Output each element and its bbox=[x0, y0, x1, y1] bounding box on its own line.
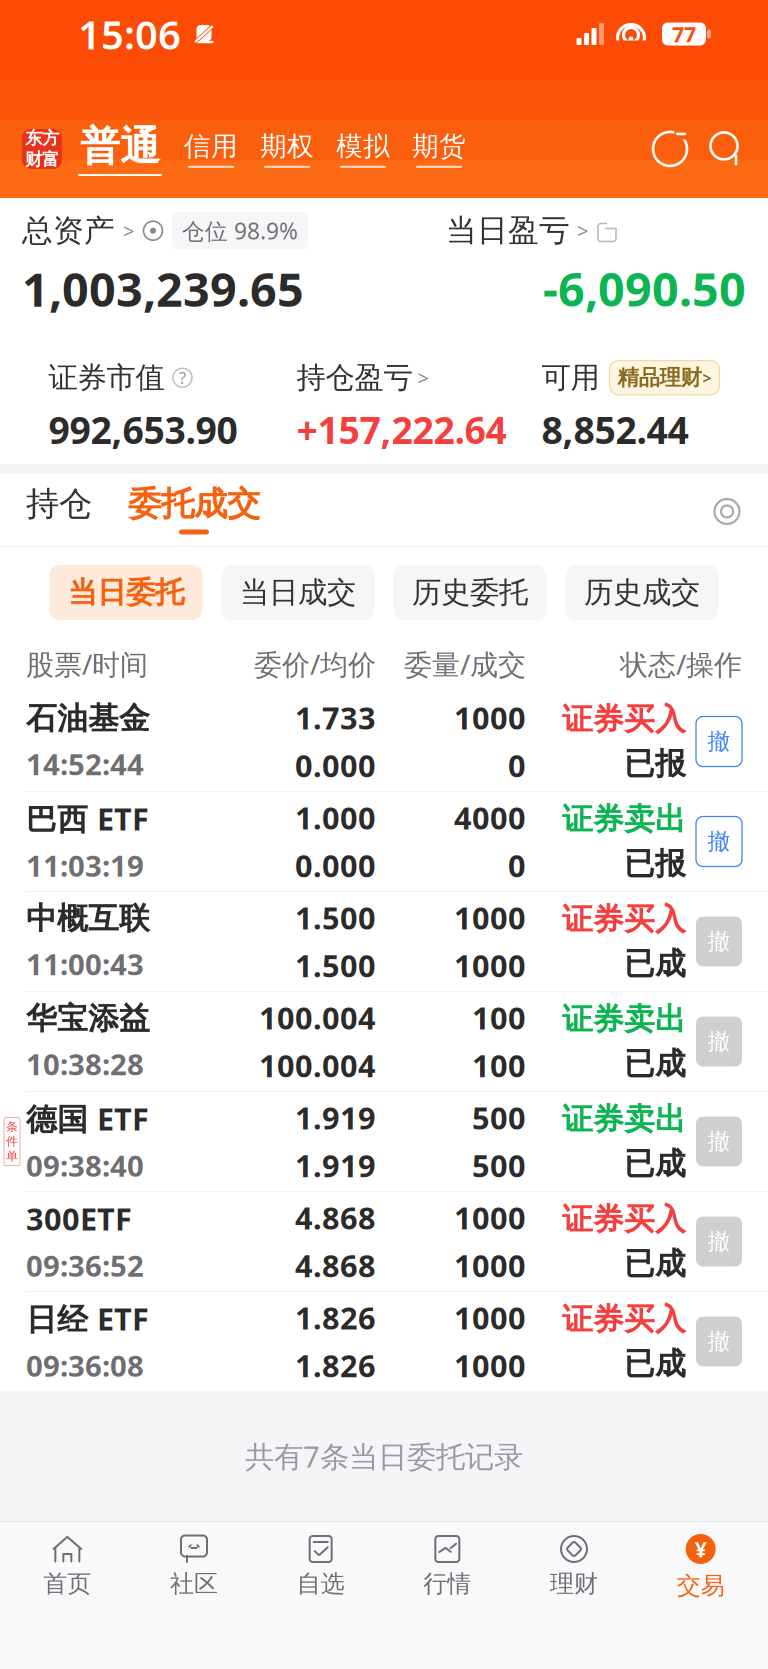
staticText: 1.733 bbox=[295, 697, 376, 738]
staticText: 8,852.44 bbox=[541, 405, 688, 454]
staticText: 1.000 bbox=[295, 797, 376, 838]
staticText: 09:36:52 bbox=[26, 1246, 144, 1285]
staticText: 77 bbox=[672, 20, 696, 48]
staticText: 14:52:44 bbox=[26, 744, 144, 783]
staticText: 1000 bbox=[454, 1297, 526, 1338]
button[interactable]: 刷新 bbox=[650, 129, 690, 169]
button[interactable]: 自选 bbox=[257, 1524, 384, 1604]
button[interactable]: 历史成交 bbox=[565, 565, 718, 620]
button[interactable]: 期货 bbox=[412, 130, 466, 168]
staticText: 仓位 98.9% bbox=[182, 216, 298, 246]
button[interactable]: 石油基金 bbox=[0, 692, 768, 791]
staticText: 可用 bbox=[541, 360, 599, 396]
staticText: 11:00:43 bbox=[26, 944, 144, 983]
staticText: 已报 bbox=[624, 745, 686, 783]
staticText: 富 bbox=[42, 149, 59, 170]
button[interactable]: 撤单 bbox=[696, 716, 742, 766]
staticText: 4.868 bbox=[295, 1197, 376, 1238]
button[interactable]: 搜索 bbox=[706, 129, 746, 169]
button[interactable]: 持仓 bbox=[26, 483, 92, 536]
button[interactable]: 行情 bbox=[384, 1524, 511, 1604]
staticText: 10:38:28 bbox=[26, 1044, 144, 1083]
staticText: -6,090.50 bbox=[543, 257, 746, 319]
staticText: 期货 bbox=[412, 130, 466, 163]
staticText: 已成 bbox=[624, 1145, 686, 1183]
staticText: 证券买入 bbox=[562, 900, 686, 938]
staticText: 0 bbox=[508, 845, 526, 886]
button[interactable]: 日经 ETF bbox=[0, 1292, 768, 1391]
staticText: 巴西 ETF bbox=[26, 798, 149, 839]
button[interactable]: 当日成交 bbox=[221, 565, 374, 620]
staticText: 500 bbox=[472, 1097, 526, 1138]
button[interactable]: 设置 bbox=[712, 496, 742, 536]
staticText: 证券买入 bbox=[562, 1200, 686, 1238]
button[interactable]: 300ETF bbox=[0, 1192, 768, 1291]
button[interactable]: 当日盈亏 bbox=[446, 212, 619, 249]
staticText: 证券买入 bbox=[562, 700, 686, 738]
button[interactable]: 期权 bbox=[260, 130, 314, 168]
staticText: 证券市值 bbox=[48, 360, 164, 396]
staticText: 模拟 bbox=[336, 130, 390, 163]
button[interactable]: 条 bbox=[0, 1092, 768, 1191]
button[interactable]: 普通 bbox=[78, 122, 162, 176]
button[interactable]: 撤单 bbox=[696, 916, 742, 966]
button[interactable]: 撤单 bbox=[696, 1216, 742, 1266]
staticText: 普通 bbox=[80, 122, 160, 171]
staticText: 4.868 bbox=[295, 1245, 376, 1286]
button[interactable]: 精品理财 bbox=[609, 361, 719, 395]
staticText: 股票/时间 bbox=[26, 645, 148, 683]
button[interactable]: 模拟 bbox=[336, 130, 390, 168]
staticText: 撤 bbox=[707, 728, 730, 755]
staticText: 已成 bbox=[624, 1045, 686, 1083]
button[interactable]: 撤单 bbox=[696, 1016, 742, 1066]
staticText: > bbox=[702, 367, 711, 388]
button[interactable]: 理财 bbox=[511, 1524, 637, 1604]
staticText: 1.826 bbox=[295, 1297, 376, 1338]
staticText: ? bbox=[179, 367, 186, 388]
staticText: ¥ bbox=[695, 1535, 707, 1563]
button[interactable]: 撤单 bbox=[696, 816, 742, 866]
staticText: 条 bbox=[6, 1119, 18, 1134]
button[interactable]: 中概互联 bbox=[0, 892, 768, 991]
staticText: 1.919 bbox=[295, 1097, 376, 1138]
staticText: 100.004 bbox=[259, 1045, 376, 1086]
staticText: 行情 bbox=[423, 1569, 471, 1598]
button[interactable]: 社区 bbox=[131, 1524, 257, 1604]
button[interactable]: 首页 bbox=[4, 1524, 131, 1604]
button[interactable]: 总资产 bbox=[22, 212, 308, 250]
staticText: 300ETF bbox=[26, 1198, 132, 1239]
button[interactable]: 历史委托 bbox=[393, 565, 546, 620]
staticText: 100 bbox=[472, 997, 526, 1038]
button[interactable]: 撤单 bbox=[696, 1316, 742, 1366]
staticText: 德国 ETF bbox=[26, 1098, 149, 1139]
staticText: 东 bbox=[25, 128, 42, 149]
staticText: 证券卖出 bbox=[562, 1100, 686, 1138]
button[interactable]: 委托成交 bbox=[128, 483, 260, 536]
staticText: 992,653.90 bbox=[48, 405, 237, 454]
button[interactable]: 撤单 bbox=[696, 1116, 742, 1166]
staticText: 撤 bbox=[707, 1028, 730, 1055]
button[interactable]: 持仓盈亏 bbox=[296, 360, 428, 396]
staticText: 0.000 bbox=[295, 745, 376, 786]
button[interactable]: 巴西 ETF bbox=[0, 792, 768, 891]
staticText: 持仓盈亏 bbox=[296, 360, 412, 396]
staticText: 11:03:19 bbox=[26, 846, 144, 885]
staticText: 100 bbox=[472, 1045, 526, 1086]
staticText: 1000 bbox=[454, 1245, 526, 1286]
staticText: 华宝添益 bbox=[26, 1000, 150, 1037]
button[interactable]: 当日委托 bbox=[49, 565, 202, 620]
button[interactable]: 东方财富 bbox=[22, 129, 62, 169]
staticText: 撤 bbox=[707, 1328, 730, 1355]
staticText: 已成 bbox=[624, 1345, 686, 1383]
staticText: 历史成交 bbox=[584, 574, 700, 610]
staticText: 理财 bbox=[550, 1569, 598, 1598]
button[interactable]: 华宝添益 bbox=[0, 992, 768, 1091]
staticText: 15:06 bbox=[78, 7, 181, 60]
staticText: 1,003,239.65 bbox=[22, 258, 304, 320]
staticText: 自选 bbox=[297, 1569, 345, 1598]
button[interactable]: ¥ bbox=[637, 1522, 764, 1606]
staticText: 1.500 bbox=[295, 945, 376, 986]
staticText: 信用 bbox=[184, 130, 238, 163]
staticText: 撤 bbox=[707, 1128, 730, 1155]
button[interactable]: 信用 bbox=[184, 130, 238, 168]
